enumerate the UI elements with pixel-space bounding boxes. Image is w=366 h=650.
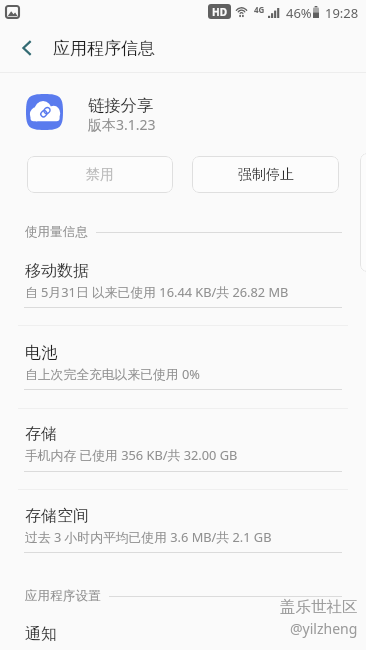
staticText: 过去 3 小时内平均已使用 3.6 MB/共 2.1 GB [25,528,272,545]
button[interactable]: 禁用 [27,156,173,193]
staticText: 自上次完全充电以来已使用 0% [25,365,200,382]
button[interactable]: 存储空间 [0,490,366,550]
staticText: 存储 [25,424,57,444]
staticText: 盖乐世社区 [280,597,358,617]
staticText: 19:28 [325,4,359,22]
staticText: 应用程序信息 [53,38,155,59]
button[interactable] [360,153,366,272]
button[interactable]: Back [5,26,49,70]
staticText: 电池 [25,343,57,363]
staticText: 4G [254,4,265,15]
button[interactable]: 电池 [0,327,366,387]
staticText: 版本3.1.23 [88,115,156,134]
button[interactable]: 存储 [0,408,366,468]
staticText: 自 5月31日 以来已使用 16.44 KB/共 26.82 MB [25,283,289,300]
staticText: 存储空间 [25,506,89,526]
staticText: 46% [286,4,312,22]
staticText: 使用量信息 [25,224,88,240]
staticText: @yilzheng [290,619,358,638]
staticText: 禁用 [86,166,114,184]
staticText: 链接分享 [88,95,154,116]
staticText: 应用程序设置 [25,588,101,604]
button[interactable]: 移动数据 [0,245,366,305]
button[interactable]: 通知 [0,610,366,650]
staticText: 强制停止 [238,166,294,184]
staticText: 手机内存 已使用 356 KB/共 32.00 GB [25,446,238,463]
staticText: 通知 [25,624,57,644]
staticText: 移动数据 [25,261,89,281]
staticText: HD [212,5,227,19]
button[interactable]: 强制停止 [192,156,339,193]
